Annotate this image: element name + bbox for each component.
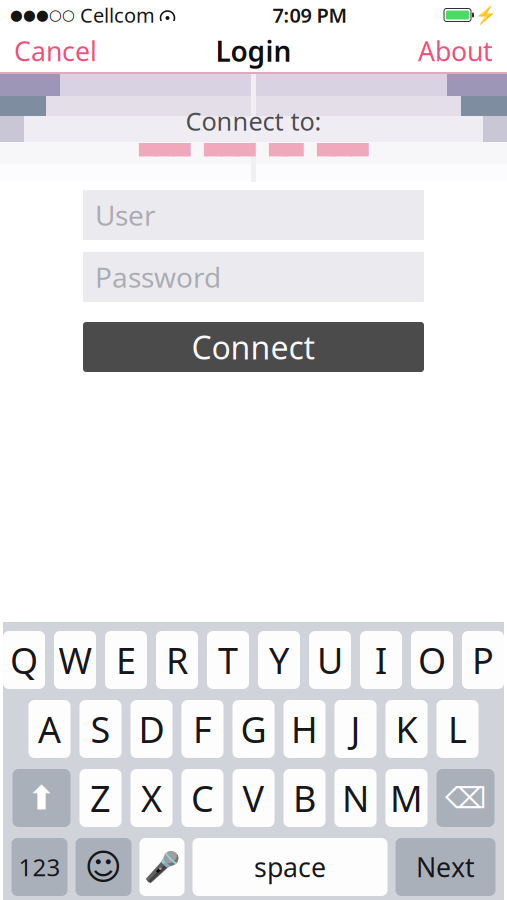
button[interactable]: J [334,700,376,758]
staticText: D [138,705,164,753]
button[interactable]: S [79,700,121,758]
staticText: C [191,774,214,822]
staticText: X [141,774,162,822]
button[interactable]: T [207,631,249,689]
button[interactable]: B [283,769,325,827]
staticText: Login [215,32,291,70]
staticText: O [418,636,446,684]
button[interactable]: Connect [83,322,424,372]
staticText: 123 [18,851,60,883]
staticText: U [317,636,343,684]
staticText: F [193,705,212,753]
staticText: Connect [191,326,315,368]
button[interactable]: space [192,838,387,896]
staticText: A [38,705,61,753]
staticText: G [240,705,266,753]
staticText: H [291,705,318,753]
button[interactable]: W [54,631,96,689]
button[interactable]: O [411,631,453,689]
staticText: K [395,705,417,753]
button[interactable]: Cancel [0,30,111,72]
staticText: W [58,636,91,684]
staticText: V [242,774,264,822]
button[interactable]: D [130,700,172,758]
staticText: M [390,774,423,822]
button[interactable]: User [83,190,424,240]
staticText: space [254,849,326,885]
staticText: ●●● [10,7,49,23]
staticText: N [342,774,369,822]
button[interactable]: E [105,631,147,689]
staticText: Y [269,636,289,684]
staticText: E [116,636,136,684]
staticText: L [448,705,467,753]
staticText: Z [90,774,111,822]
staticText: J [350,705,360,753]
button[interactable]: U [309,631,351,689]
staticText: Cancel [14,33,97,69]
staticText: ⬆ [27,779,55,817]
staticText: ▀▀▀ ▀▀▀ ▀▀ ▀▀▀ [139,144,368,169]
staticText: Cellcom [75,2,155,28]
staticText: ⚡ [475,5,497,25]
staticText: T [218,636,238,684]
button[interactable]: G [232,700,274,758]
button[interactable]: I [360,631,402,689]
button[interactable]: C [181,769,223,827]
button[interactable]: About [404,30,507,72]
button[interactable]: Q [3,631,45,689]
button[interactable]: R [156,631,198,689]
staticText: Next [416,849,475,885]
staticText: I [375,636,387,684]
button[interactable]: K [385,700,427,758]
button[interactable]: Delete [436,769,494,827]
staticText: Connect to: [185,104,321,138]
button[interactable]: L [436,700,478,758]
staticText: B [293,774,316,822]
button[interactable]: Y [258,631,300,689]
button[interactable]: V [232,769,274,827]
staticText: Q [10,636,38,684]
staticText: R [166,636,188,684]
staticText: S [90,705,110,753]
button[interactable]: Next [395,838,495,896]
button[interactable]: H [283,700,325,758]
staticText: About [418,33,493,69]
button[interactable]: F [181,700,223,758]
staticText: 7:09 PM [272,2,347,28]
button[interactable]: A [28,700,70,758]
button[interactable]: Dictate [139,838,184,896]
button[interactable]: N [334,769,376,827]
button[interactable]: Emoji [75,838,131,896]
button[interactable]: Z [79,769,121,827]
button[interactable]: M [385,769,427,827]
staticText: P [472,636,494,684]
staticText: Password [95,258,221,296]
button[interactable]: P [462,631,504,689]
button[interactable]: X [130,769,172,827]
button[interactable]: 123 [11,838,67,896]
staticText: ☺ [84,847,122,887]
button[interactable]: Password [83,252,424,302]
staticText: ○○ [49,7,75,23]
staticText: User [95,196,156,234]
staticText: 🎤 [143,850,180,884]
staticText: ⌫ [445,781,486,815]
button[interactable]: Shift [12,769,70,827]
